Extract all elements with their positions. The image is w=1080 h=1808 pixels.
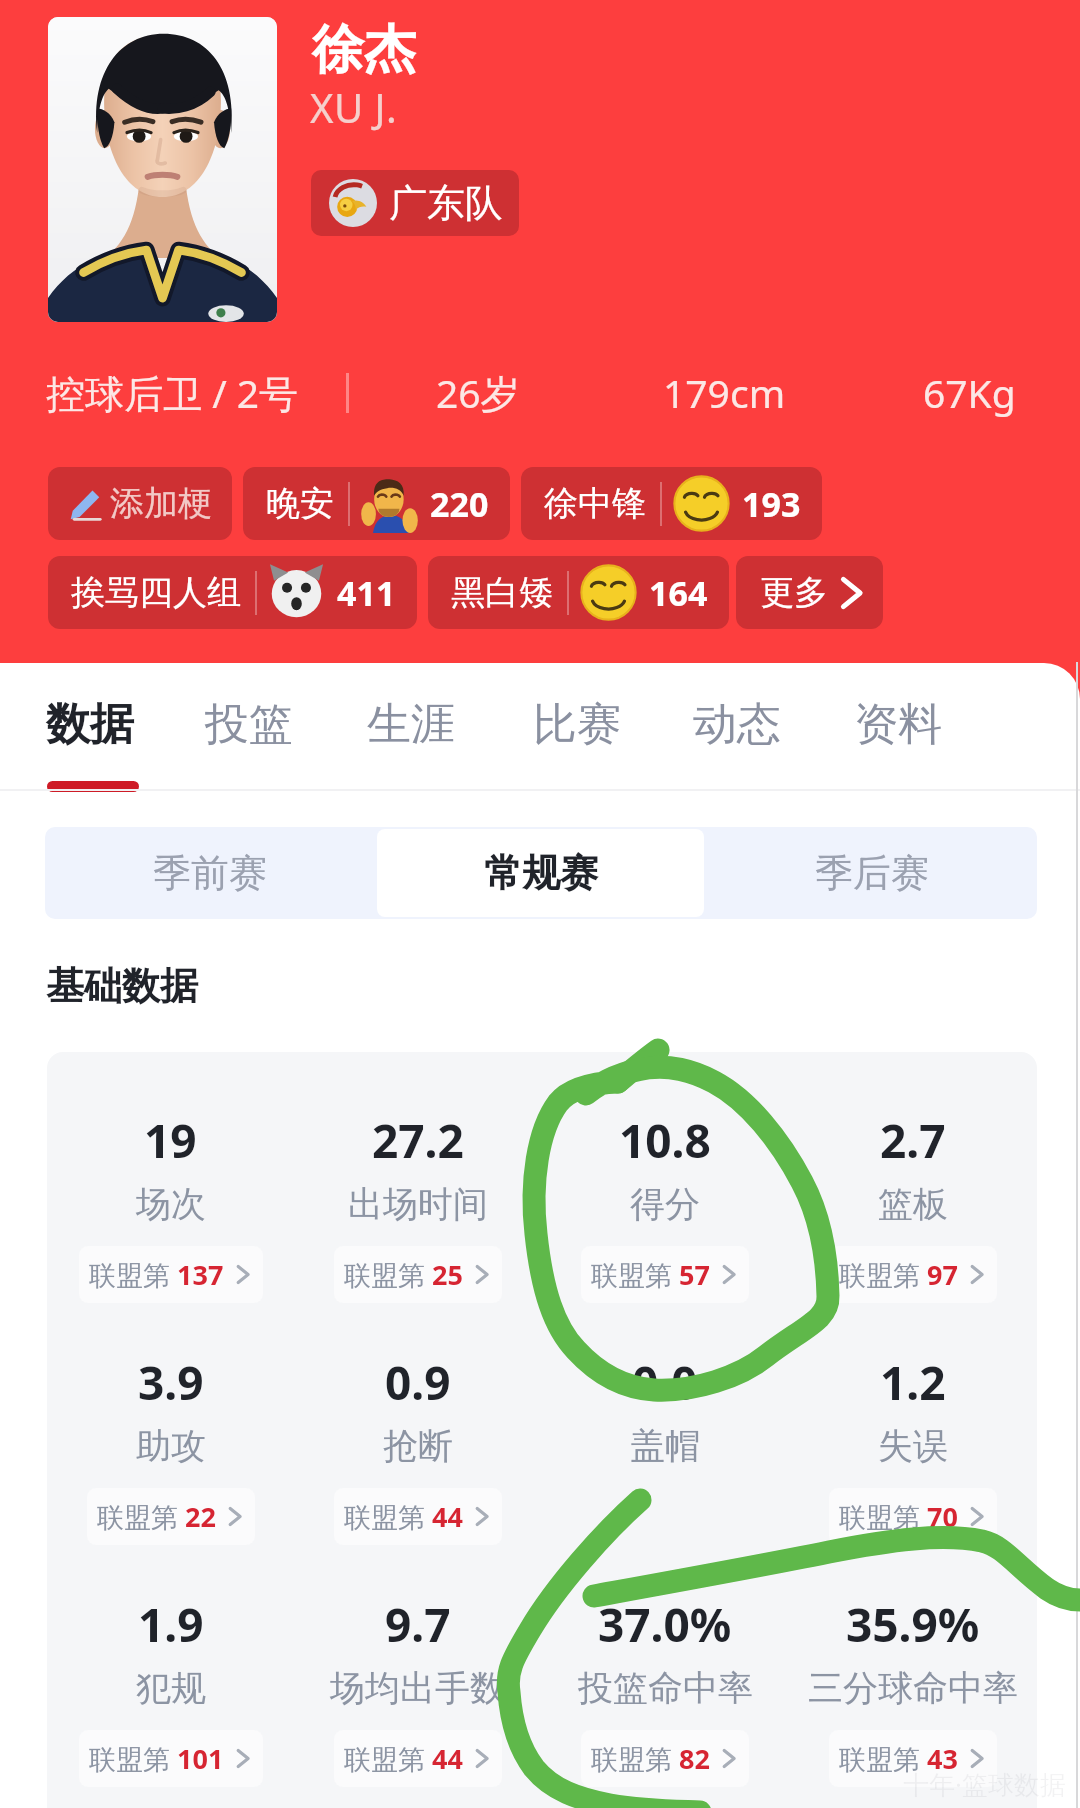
button[interactable]: 10.8 bbox=[541, 1109, 789, 1303]
staticText: 220 bbox=[430, 481, 489, 527]
button[interactable]: 季前赛 bbox=[47, 829, 373, 917]
staticText: 场次 bbox=[136, 1182, 206, 1226]
button[interactable]: 挨骂四人组 bbox=[48, 556, 417, 629]
button[interactable]: 添加梗 bbox=[48, 467, 232, 540]
other: 添加梗 bbox=[68, 487, 102, 521]
button[interactable]: 晚安 bbox=[243, 467, 510, 540]
button[interactable]: 联盟第 101 bbox=[79, 1730, 263, 1787]
staticText: 3.9 bbox=[138, 1351, 204, 1414]
button[interactable]: 3.9 bbox=[47, 1351, 294, 1545]
button[interactable]: 动态 bbox=[689, 689, 785, 760]
staticText: 生涯 bbox=[367, 697, 455, 752]
staticText: 联盟第 101 bbox=[89, 1740, 224, 1777]
button[interactable]: 9.7 bbox=[294, 1593, 541, 1787]
other: 广东队 bbox=[329, 179, 377, 227]
button[interactable]: 联盟第 43 bbox=[829, 1730, 997, 1787]
button[interactable]: 联盟第 97 bbox=[829, 1246, 997, 1303]
button[interactable]: 1.9 bbox=[47, 1593, 294, 1787]
staticText: 盖帽 bbox=[630, 1424, 700, 1468]
staticText: 联盟第 57 bbox=[591, 1256, 710, 1293]
button[interactable]: 黑白矮 bbox=[428, 556, 729, 629]
staticText: 常规赛 bbox=[484, 849, 598, 897]
staticText: 411 bbox=[337, 570, 396, 616]
button[interactable]: 联盟第 44 bbox=[334, 1488, 502, 1545]
staticText: 联盟第 137 bbox=[89, 1256, 224, 1293]
button[interactable]: 生涯 bbox=[363, 689, 459, 760]
button[interactable]: 0.9 bbox=[294, 1351, 541, 1545]
staticText: 37.0% bbox=[598, 1593, 732, 1656]
button[interactable]: 季后赛 bbox=[708, 829, 1035, 917]
button[interactable]: 比赛 bbox=[529, 689, 625, 760]
button[interactable]: 徐杰 球员照片 bbox=[48, 17, 277, 322]
button[interactable]: 联盟第 25 bbox=[334, 1246, 502, 1303]
staticText: 联盟第 97 bbox=[839, 1256, 958, 1293]
button[interactable]: 37.0% bbox=[541, 1593, 789, 1787]
button[interactable]: 联盟第 137 bbox=[79, 1246, 263, 1303]
staticText: 10.8 bbox=[619, 1109, 711, 1172]
staticText: 季前赛 bbox=[153, 849, 267, 897]
button[interactable]: 联盟第 44 bbox=[334, 1730, 502, 1787]
staticText: 35.9% bbox=[846, 1593, 980, 1656]
staticText: 失误 bbox=[878, 1424, 948, 1468]
staticText: 联盟第 22 bbox=[97, 1498, 216, 1535]
staticText: 资料 bbox=[854, 697, 942, 752]
button[interactable]: 联盟第 22 bbox=[87, 1488, 255, 1545]
staticText: 添加梗 bbox=[110, 482, 212, 525]
staticText: 黑白矮 bbox=[451, 571, 553, 614]
staticText: 0.0 bbox=[632, 1351, 698, 1414]
staticText: 季后赛 bbox=[815, 849, 929, 897]
button[interactable]: 19 bbox=[47, 1109, 294, 1303]
staticText: 26岁 bbox=[436, 366, 520, 419]
button[interactable]: 联盟第 82 bbox=[581, 1730, 749, 1787]
staticText: 犯规 bbox=[136, 1666, 206, 1710]
button[interactable]: 数据 bbox=[42, 689, 138, 760]
button[interactable]: 常规赛 bbox=[377, 829, 704, 917]
button[interactable]: 联盟第 70 bbox=[829, 1488, 997, 1545]
staticText: 助攻 bbox=[136, 1424, 206, 1468]
staticText: 比赛 bbox=[533, 697, 621, 752]
button[interactable]: 资料 bbox=[850, 689, 946, 760]
staticText: 联盟第 82 bbox=[591, 1740, 710, 1777]
staticText: 联盟第 25 bbox=[344, 1256, 463, 1293]
staticText: 0.9 bbox=[385, 1351, 451, 1414]
staticText: 投篮命中率 bbox=[578, 1666, 753, 1710]
button[interactable]: 0.0 bbox=[541, 1351, 789, 1545]
staticText: 联盟第 44 bbox=[344, 1498, 463, 1535]
staticText: XU J. bbox=[310, 80, 398, 134]
staticText: 篮板 bbox=[878, 1182, 948, 1226]
staticText: 联盟第 43 bbox=[839, 1740, 958, 1777]
staticText: 晚安 bbox=[266, 482, 334, 525]
staticText: 十年·篮球数据 bbox=[903, 1766, 1066, 1802]
button[interactable]: 联盟第 57 bbox=[581, 1246, 749, 1303]
button[interactable]: 更多 bbox=[736, 556, 883, 629]
button[interactable]: 广东队 bbox=[311, 170, 519, 236]
staticText: 联盟第 44 bbox=[344, 1740, 463, 1777]
staticText: 数据 bbox=[46, 697, 134, 752]
staticText: 抢断 bbox=[383, 1424, 453, 1468]
button[interactable]: 投篮 bbox=[201, 689, 297, 760]
staticText: 2.7 bbox=[880, 1109, 946, 1172]
staticText: 基础数据 bbox=[46, 962, 198, 1010]
button[interactable]: 27.2 bbox=[294, 1109, 541, 1303]
staticText: 挨骂四人组 bbox=[71, 571, 241, 614]
staticText: 得分 bbox=[630, 1182, 700, 1226]
staticText: 三分球命中率 bbox=[808, 1666, 1018, 1710]
staticText: 193 bbox=[742, 481, 801, 527]
staticText: 广东队 bbox=[389, 179, 503, 227]
button[interactable]: 35.9% bbox=[789, 1593, 1037, 1787]
staticText: 1.9 bbox=[138, 1593, 204, 1656]
staticText: 27.2 bbox=[372, 1109, 464, 1172]
staticText: 67Kg bbox=[923, 366, 1016, 419]
staticText: 出场时间 bbox=[348, 1182, 488, 1226]
staticText: 场均出手数 bbox=[330, 1666, 505, 1710]
staticText: 联盟第 70 bbox=[839, 1498, 958, 1535]
staticText: 1.2 bbox=[880, 1351, 946, 1414]
button[interactable]: 1.2 bbox=[789, 1351, 1037, 1545]
staticText: 投篮 bbox=[205, 697, 293, 752]
staticText: 徐中锋 bbox=[544, 482, 646, 525]
button[interactable]: 2.7 bbox=[789, 1109, 1037, 1303]
staticText: 徐杰 bbox=[312, 17, 416, 83]
staticText: 动态 bbox=[693, 697, 781, 752]
staticText: 19 bbox=[144, 1109, 197, 1172]
button[interactable]: 徐中锋 bbox=[521, 467, 822, 540]
